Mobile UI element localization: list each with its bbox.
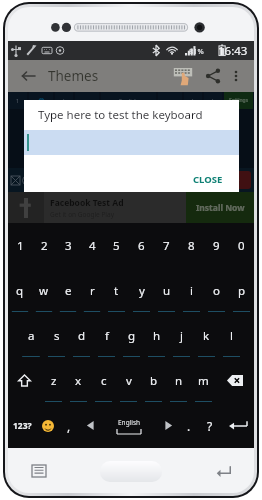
button[interactable]: Previous [79, 403, 101, 448]
button[interactable]: Enter [221, 403, 254, 448]
staticText: o [213, 283, 220, 299]
button[interactable]: Next [157, 403, 179, 448]
staticText: 1 [17, 238, 24, 254]
button[interactable]: , [59, 403, 79, 448]
staticText: English [118, 418, 141, 427]
button[interactable]: b [141, 358, 166, 403]
staticText: English [119, 97, 138, 104]
button[interactable]: o [204, 268, 229, 313]
button[interactable]: 2 [32, 223, 56, 268]
staticText: ) [63, 97, 65, 104]
button[interactable]: e [56, 268, 80, 313]
staticText: k [203, 328, 210, 344]
button[interactable]: m [191, 358, 216, 403]
button[interactable]: 8 [179, 223, 204, 268]
button[interactable]: 7 [154, 223, 179, 268]
button[interactable]: Home [100, 461, 162, 482]
staticText: ? [207, 418, 213, 434]
button[interactable]: x [66, 358, 91, 403]
staticText: r [90, 283, 95, 299]
button[interactable]: Play video [221, 171, 251, 189]
staticText: Settings [229, 97, 249, 104]
button[interactable]: g [119, 313, 144, 358]
button[interactable]: s [44, 313, 69, 358]
button[interactable]: u [154, 268, 179, 313]
button[interactable]: 6 [129, 223, 154, 268]
staticText: . [187, 418, 191, 434]
button[interactable]: p [229, 268, 254, 313]
button[interactable]: k [194, 313, 219, 358]
staticText: 5 [113, 238, 120, 254]
staticText: q [16, 283, 24, 299]
button[interactable]: t [104, 268, 129, 313]
button[interactable]: Back [16, 64, 40, 88]
staticText: c [101, 373, 107, 389]
staticText: v [126, 373, 132, 389]
button[interactable]: Share [200, 63, 226, 89]
staticText: 3 [65, 238, 72, 254]
button[interactable]: y [129, 268, 154, 313]
staticText: 1 [16, 97, 20, 104]
staticText: i [190, 283, 193, 299]
staticText: f [105, 328, 109, 344]
staticText: Type here to test the keyboard [38, 107, 203, 123]
button[interactable]: l [219, 313, 244, 358]
staticText: 81% [189, 46, 204, 56]
button[interactable]: Install Now [186, 192, 254, 223]
staticText: 123? [13, 420, 32, 432]
staticText: n [175, 373, 183, 389]
button[interactable]: i [179, 268, 204, 313]
staticText: Install Now [196, 202, 245, 214]
staticText: , [67, 418, 71, 434]
staticText: u [163, 283, 171, 299]
button[interactable]: 3 [56, 223, 80, 268]
button[interactable]: j [169, 313, 194, 358]
button[interactable]: h [144, 313, 169, 358]
staticText: ! [192, 97, 194, 104]
button[interactable]: More options [226, 66, 246, 86]
button[interactable]: Test keyboard [170, 63, 196, 89]
button[interactable]: Emoji [37, 403, 59, 448]
button[interactable]: w [32, 268, 56, 313]
button[interactable]: Space [101, 403, 157, 448]
staticText: ! [212, 97, 214, 104]
button[interactable]: f [94, 313, 119, 358]
staticText: x [75, 373, 82, 389]
button[interactable]: 1 [8, 223, 32, 268]
staticText: - [86, 97, 88, 104]
button[interactable]: Shift [8, 358, 41, 403]
button[interactable]: 0 [229, 223, 254, 268]
staticText: 7 [163, 238, 170, 254]
button[interactable]: a [18, 313, 44, 358]
button[interactable]: 9 [204, 223, 229, 268]
button[interactable]: 123? [8, 403, 37, 448]
staticText: p [238, 283, 246, 299]
staticText: 16:43 [218, 43, 248, 59]
button[interactable]: ? [199, 403, 221, 448]
button[interactable] [24, 130, 239, 155]
button[interactable]: v [116, 358, 141, 403]
button[interactable]: Menu [28, 460, 50, 482]
staticText: Get it on Google Play [50, 210, 114, 219]
button[interactable]: c [91, 358, 116, 403]
staticText: w [39, 283, 49, 299]
button[interactable]: CLOSE [187, 170, 229, 189]
staticText: 6 [138, 238, 145, 254]
button[interactable]: n [166, 358, 191, 403]
button[interactable]: Backspace [216, 358, 254, 403]
staticText: 4 [89, 238, 96, 254]
button[interactable]: 5 [104, 223, 129, 268]
button[interactable]: . [179, 403, 199, 448]
button[interactable]: 4 [80, 223, 104, 268]
staticText: 8 [188, 238, 195, 254]
button[interactable]: d [69, 313, 94, 358]
button[interactable]: z [41, 358, 66, 403]
staticText: j [180, 328, 183, 344]
staticText: CLOSE [193, 173, 223, 186]
button[interactable]: Back [212, 460, 234, 482]
button[interactable]: r [80, 268, 104, 313]
staticText: g [128, 328, 136, 344]
staticText: 🌐 [38, 98, 45, 104]
button[interactable]: q [8, 268, 32, 313]
